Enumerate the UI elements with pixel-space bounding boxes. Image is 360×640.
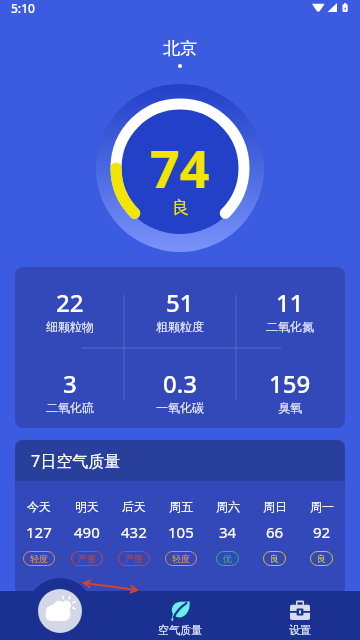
- staticText: 432: [121, 522, 147, 542]
- staticText: 一氧化碳: [156, 400, 204, 415]
- staticText: 北京: [0, 38, 360, 59]
- staticText: 22: [56, 286, 84, 319]
- staticText: 周五: [169, 499, 193, 514]
- staticText: 5:10: [11, 0, 35, 16]
- staticText: 空气质量: [158, 623, 202, 637]
- staticText: 0.3: [163, 367, 197, 400]
- staticText: 92: [313, 522, 331, 542]
- staticText: 105: [168, 522, 194, 542]
- staticText: 34: [219, 522, 237, 542]
- button[interactable]: 今天: [15, 481, 63, 595]
- button[interactable]: 周五: [157, 481, 204, 595]
- button[interactable]: 周一: [298, 481, 345, 595]
- button[interactable]: 0.3: [125, 347, 235, 428]
- button[interactable]: 后天: [110, 481, 157, 595]
- button[interactable]: 51: [125, 267, 235, 347]
- staticText: 周日: [263, 499, 287, 514]
- staticText: 粗颗粒度: [156, 319, 204, 334]
- staticText: 设置: [289, 623, 311, 637]
- button[interactable]: 159: [235, 347, 345, 428]
- staticText: 51: [166, 286, 194, 319]
- staticText: 127: [26, 522, 52, 542]
- staticText: 严重: [78, 553, 96, 564]
- staticText: 严重: [125, 553, 143, 564]
- staticText: 二氧化硫: [46, 400, 94, 415]
- staticText: 周六: [216, 499, 240, 514]
- staticText: 今天: [27, 499, 51, 514]
- staticText: 轻度: [30, 553, 48, 564]
- button[interactable]: 设置: [240, 591, 360, 640]
- button[interactable]: 11: [235, 267, 345, 347]
- staticText: 良: [317, 553, 326, 564]
- staticText: 后天: [122, 499, 146, 514]
- staticText: 二氧化氮: [266, 319, 314, 334]
- staticText: 周一: [310, 499, 334, 514]
- staticText: 细颗粒物: [46, 319, 94, 334]
- button[interactable]: 3: [15, 347, 125, 428]
- staticText: 7日空气质量: [31, 450, 121, 472]
- button[interactable]: 明天: [63, 481, 110, 595]
- button[interactable]: 周六: [204, 481, 251, 595]
- staticText: 490: [74, 522, 100, 542]
- staticText: 11: [276, 286, 304, 319]
- staticText: 159: [269, 367, 311, 400]
- staticText: 臭氧: [278, 400, 302, 415]
- staticText: 良: [172, 197, 189, 218]
- staticText: 优: [223, 553, 232, 564]
- staticText: 3: [63, 367, 77, 400]
- staticText: 良: [270, 553, 279, 564]
- staticText: 66: [266, 522, 284, 542]
- staticText: 74: [150, 132, 210, 203]
- button[interactable]: Weather: [38, 589, 82, 633]
- button[interactable]: 空气质量: [120, 591, 240, 640]
- button[interactable]: 22: [15, 267, 125, 347]
- staticText: 明天: [75, 499, 99, 514]
- staticText: 轻度: [172, 553, 190, 564]
- button[interactable]: 周日: [251, 481, 298, 595]
